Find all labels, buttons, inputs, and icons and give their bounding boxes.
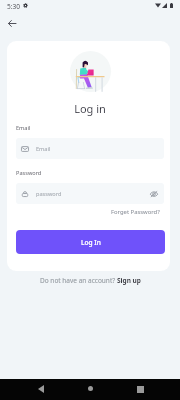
staticText: Sign up <box>117 276 141 285</box>
button[interactable]: Recents <box>132 381 148 397</box>
staticText: Log In <box>81 238 101 247</box>
staticText: Email <box>16 124 31 132</box>
button[interactable]: Log In <box>16 230 165 254</box>
button[interactable]: Forget Password? <box>109 206 162 218</box>
staticText: Forget Password? <box>111 208 160 216</box>
button[interactable]: Back <box>4 15 20 31</box>
button[interactable]: Sign up <box>117 276 141 285</box>
button[interactable]: Email <box>16 138 164 159</box>
staticText: 5:30 <box>7 2 21 11</box>
staticText: password <box>36 190 62 198</box>
staticText: Log in <box>0 101 180 116</box>
staticText: Do not have an account? <box>40 276 117 285</box>
button[interactable]: Home <box>82 380 98 396</box>
staticText: Password <box>16 169 42 177</box>
button[interactable]: Show password <box>149 189 158 198</box>
staticText: Email <box>36 145 51 153</box>
button[interactable]: Back <box>33 381 49 397</box>
button[interactable]: password <box>16 183 164 204</box>
